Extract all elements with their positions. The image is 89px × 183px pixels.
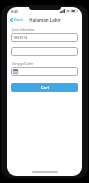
button[interactable]: Back bbox=[7, 16, 27, 24]
button[interactable]: Cari bbox=[11, 83, 78, 92]
staticText: 1803014 bbox=[13, 35, 28, 40]
button[interactable] bbox=[11, 47, 78, 56]
staticText: Back bbox=[14, 17, 24, 23]
staticText: Cari bbox=[41, 85, 49, 90]
staticText: Jenis Identitas bbox=[12, 27, 35, 32]
button[interactable]: 1803014 bbox=[11, 33, 78, 42]
button[interactable] bbox=[11, 67, 78, 76]
staticText: Halaman Lahir bbox=[29, 17, 61, 23]
staticText: Tanggal Lahir bbox=[12, 61, 34, 66]
staticText: 8:45 bbox=[11, 9, 19, 14]
